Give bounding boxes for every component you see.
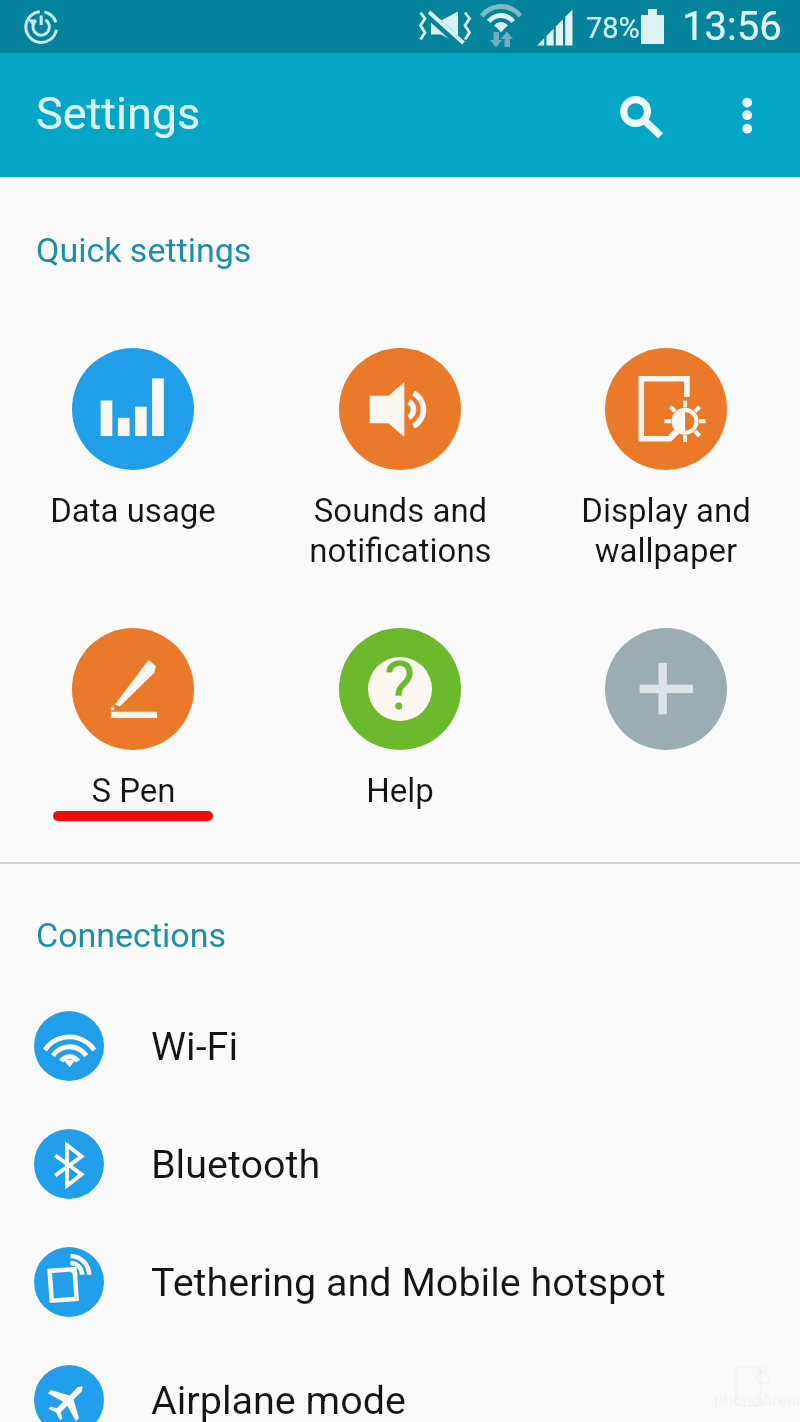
staticText: S Pen [91,771,176,810]
button[interactable]: Bluetooth [0,1105,800,1223]
button[interactable]: Display and wallpaper [533,348,799,588]
button[interactable]: Search [590,53,682,177]
staticText: Settings [36,87,201,140]
staticText: Quick settings [36,230,252,270]
staticText: Wi-Fi [151,1023,239,1069]
staticText: Data usage [50,491,216,530]
staticText: ? [384,648,416,725]
staticText: 13:56 [682,3,782,50]
button[interactable]: More options [700,53,800,177]
staticText: Connections [36,915,227,955]
button[interactable]: Help [267,628,533,868]
button[interactable]: S Pen [0,628,266,868]
staticText: Bluetooth [151,1141,321,1187]
button[interactable]: Data usage [0,348,266,588]
button[interactable]: Tethering and Mobile hotspot [0,1223,800,1341]
staticText: Sounds and notifications [309,491,492,570]
staticText: 78% [586,11,640,45]
staticText: Tethering and Mobile hotspot [151,1259,666,1305]
button[interactable]: Airplane mode [0,1341,800,1422]
button[interactable]: Add shortcut [533,628,799,868]
staticText: Display and wallpaper [581,491,751,570]
button[interactable]: Sounds and notifications [267,348,533,588]
button[interactable]: Wi-Fi [0,987,800,1105]
staticText: Help [366,771,434,810]
staticText: Airplane mode [151,1377,406,1422]
